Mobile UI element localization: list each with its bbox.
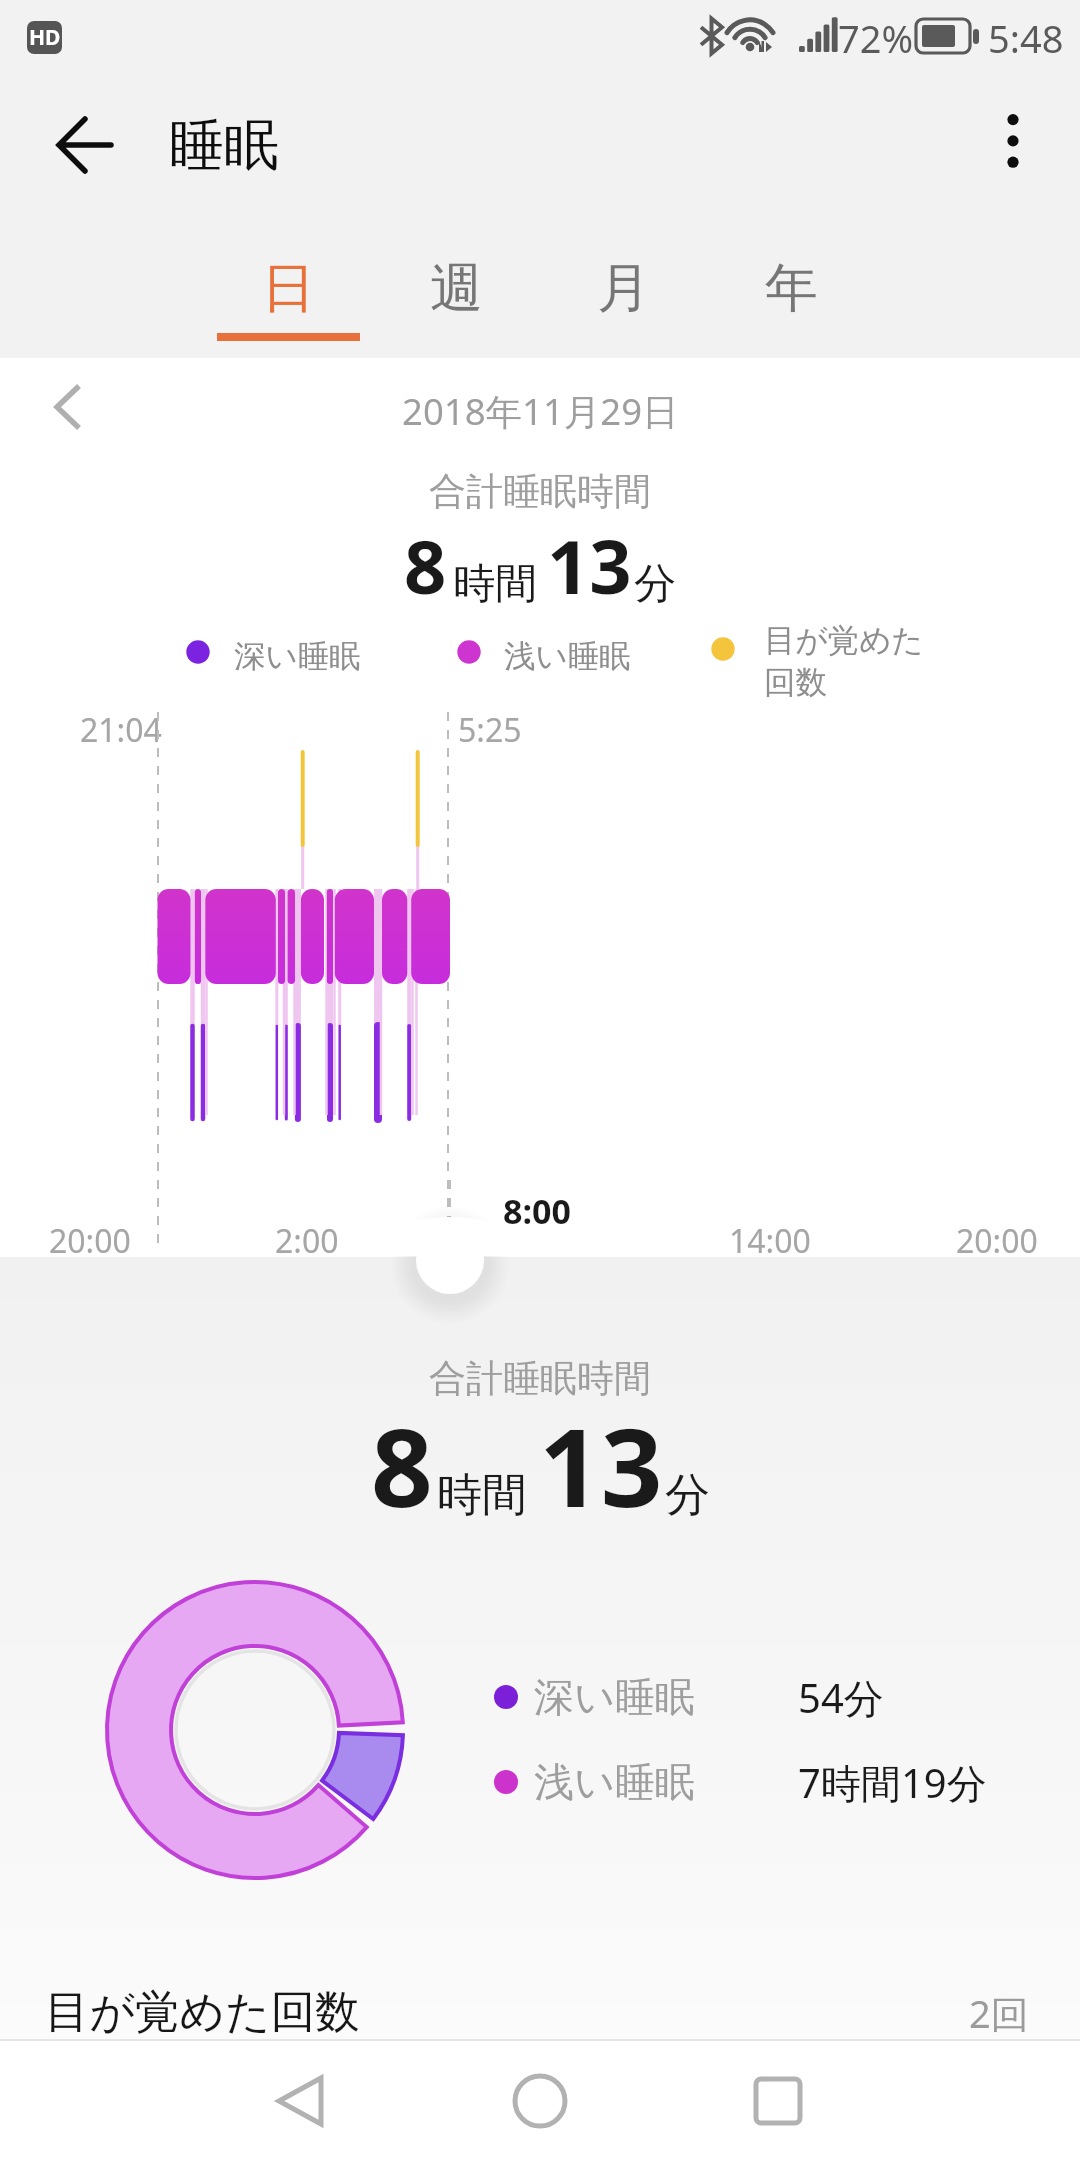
staticText: 目が覚めた回数 <box>45 1984 360 2040</box>
staticText: 21:04 <box>80 708 162 752</box>
staticText: 8 <box>371 1392 433 1539</box>
staticText: 深い睡眠 <box>534 1672 695 1722</box>
staticText: 72% <box>838 12 914 64</box>
staticText: 7時間19分 <box>798 1755 987 1810</box>
button[interactable]: Back <box>240 2041 360 2160</box>
staticText: 月 <box>597 255 650 322</box>
staticText: 13 <box>547 515 632 616</box>
staticText: 20:00 <box>956 1219 1038 1263</box>
staticText: 時間 <box>453 558 537 611</box>
button[interactable]: 日 <box>208 233 368 343</box>
staticText: 5:25 <box>458 708 522 752</box>
staticText: 時間 <box>437 1467 527 1524</box>
staticText: 浅い睡眠 <box>534 1757 695 1807</box>
staticText: 深い睡眠 <box>234 637 361 677</box>
staticText: 8:00 <box>503 1188 571 1234</box>
staticText: 2:00 <box>275 1219 339 1263</box>
staticText: 浅い睡眠 <box>504 637 631 677</box>
staticText: 合計睡眠時間 <box>429 468 651 515</box>
staticText: 13 <box>539 1392 663 1539</box>
button[interactable]: 目が覚めた回数 <box>0 1955 1080 2041</box>
button[interactable]: Previous day <box>24 720 112 808</box>
staticText: 分 <box>665 1467 710 1524</box>
button[interactable]: More options <box>967 99 1059 191</box>
staticText: 目が覚めた 回数 <box>764 621 924 702</box>
button[interactable]: Recents <box>718 2041 838 2160</box>
staticText: 20:00 <box>49 1219 131 1263</box>
staticText: 8 <box>404 515 447 616</box>
staticText: 年 <box>765 255 818 322</box>
button[interactable]: 月 <box>543 233 703 343</box>
staticText: HD <box>29 23 61 52</box>
button[interactable]: Back <box>39 99 131 191</box>
staticText: 日 <box>262 255 315 322</box>
staticText: 54分 <box>798 1670 884 1725</box>
staticText: 週 <box>430 255 483 322</box>
staticText: 睡眠 <box>169 111 279 180</box>
staticText: 5:48 <box>988 12 1064 64</box>
button[interactable]: Home <box>480 2041 600 2160</box>
staticText: 2018年11月29日 <box>402 386 679 436</box>
button[interactable]: 年 <box>711 233 871 343</box>
staticText: 分 <box>634 558 676 611</box>
staticText: 14:00 <box>729 1219 811 1263</box>
button[interactable]: 週 <box>376 233 536 343</box>
staticText: 2回 <box>969 1987 1029 2039</box>
staticText: 合計睡眠時間 <box>429 1355 651 1402</box>
